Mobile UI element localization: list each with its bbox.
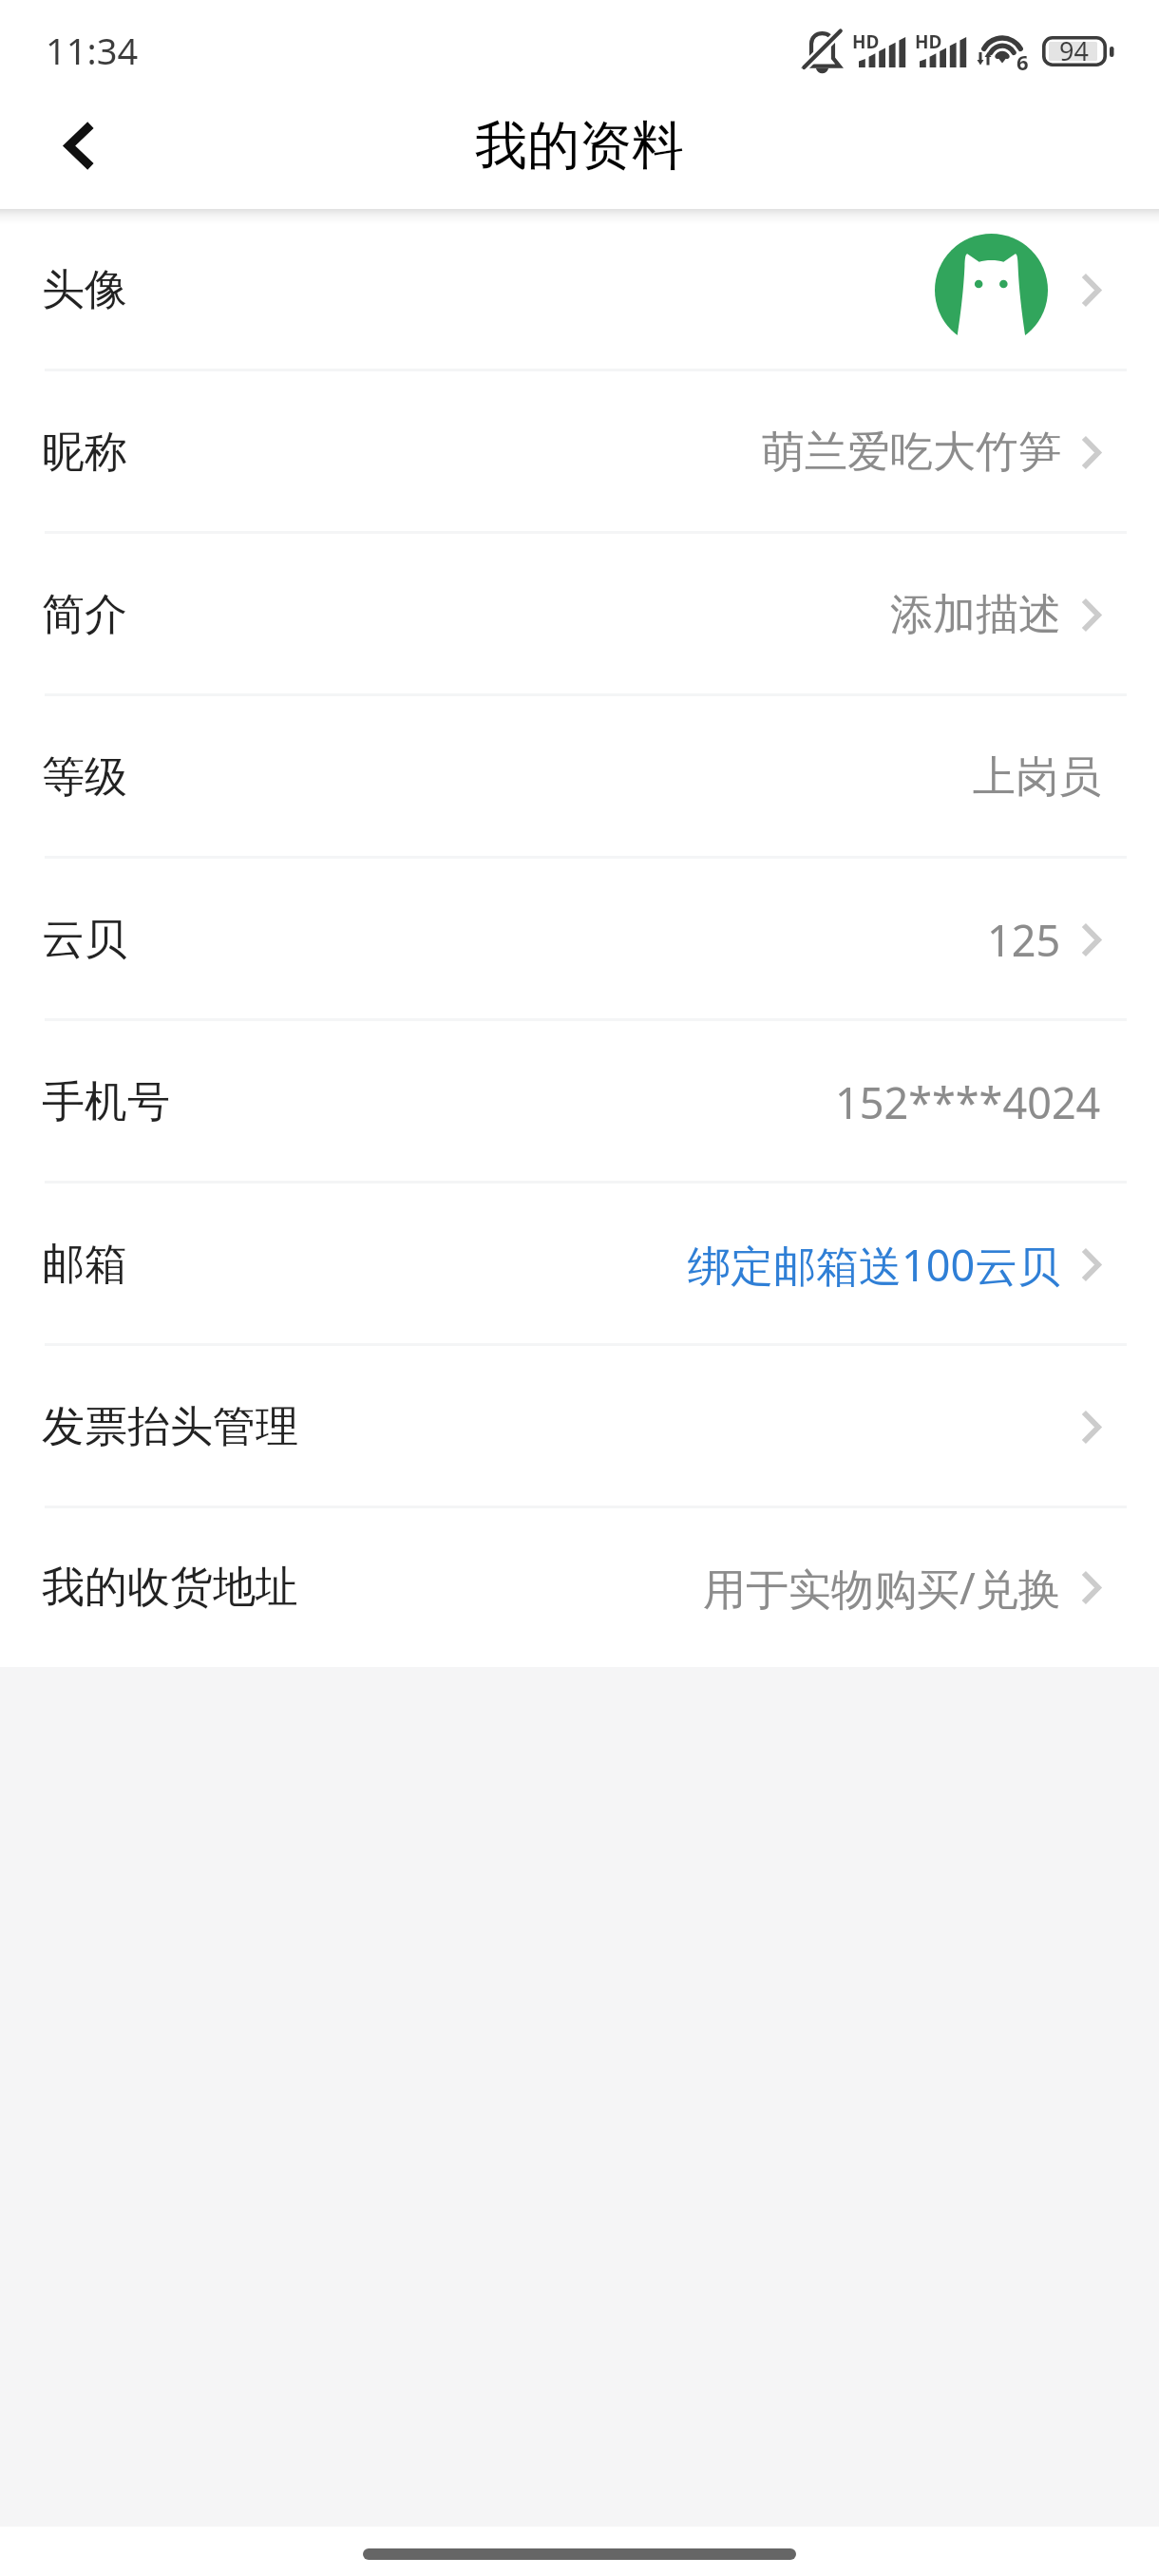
staticText: 昵称 <box>42 426 127 480</box>
staticText: 添加描述 <box>890 588 1061 642</box>
staticText: 用于实物购买/兑换 <box>703 1559 1061 1617</box>
staticText: 等级 <box>42 750 127 805</box>
staticText: 简介 <box>42 588 127 642</box>
button[interactable]: 我的收货地址 <box>0 1508 1159 1667</box>
staticText: 发票抬头管理 <box>42 1400 298 1454</box>
button[interactable]: 邮箱 <box>0 1184 1159 1346</box>
staticText: 绑定邮箱送100云贝 <box>688 1236 1061 1294</box>
staticText: 125 <box>987 911 1061 969</box>
staticText: 6 <box>1016 47 1029 76</box>
staticText: 云贝 <box>42 913 127 967</box>
staticText: 邮箱 <box>42 1238 127 1292</box>
staticText: 152****4024 <box>835 1073 1101 1131</box>
staticText: 我的收货地址 <box>42 1561 298 1615</box>
button[interactable]: 等级 <box>0 696 1159 859</box>
staticText: 萌兰爱吃大竹笋 <box>762 426 1061 480</box>
staticText: 头像 <box>42 263 127 317</box>
staticText: HD <box>915 29 942 54</box>
button[interactable]: 发票抬头管理 <box>0 1346 1159 1508</box>
staticText: 手机号 <box>42 1075 170 1129</box>
button[interactable]: 头像 <box>0 209 1159 371</box>
button[interactable]: 云贝 <box>0 859 1159 1021</box>
button[interactable]: Back <box>23 88 137 202</box>
staticText: 94 <box>1059 33 1089 68</box>
staticText: HD <box>852 29 880 54</box>
staticText: 我的资料 <box>475 113 684 179</box>
button[interactable]: 手机号 <box>0 1021 1159 1184</box>
button[interactable]: 简介 <box>0 534 1159 696</box>
staticText: 上岗员 <box>973 750 1101 805</box>
button[interactable]: 昵称 <box>0 371 1159 534</box>
staticText: 11:34 <box>46 26 139 75</box>
